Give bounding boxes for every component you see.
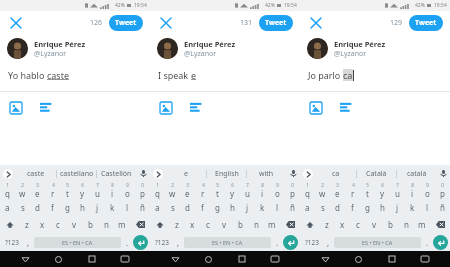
button[interactable]: 1 <box>300 182 315 199</box>
button[interactable]: Recents <box>84 251 100 267</box>
button[interactable]: l <box>420 199 435 216</box>
button[interactable]: Expand suggestions <box>0 165 16 182</box>
button[interactable]: Add poll <box>188 100 204 116</box>
button[interactable]: ñ <box>435 199 450 216</box>
button[interactable]: k <box>255 199 270 216</box>
button[interactable]: 3 <box>30 182 45 199</box>
button[interactable]: Period <box>421 233 433 251</box>
button[interactable]: Close <box>157 14 175 32</box>
button[interactable]: n <box>248 216 264 233</box>
button[interactable]: Backspace <box>280 216 300 233</box>
button[interactable]: m <box>114 216 130 233</box>
button[interactable]: ?123 <box>2 233 22 251</box>
button[interactable]: Shift <box>150 216 169 233</box>
button[interactable]: 4 <box>345 182 360 199</box>
button[interactable]: ?123 <box>152 233 172 251</box>
button[interactable]: Space <box>334 237 421 248</box>
button[interactable]: v <box>366 216 382 233</box>
button[interactable]: 0 <box>435 182 450 199</box>
button[interactable]: m <box>414 216 430 233</box>
button[interactable]: c <box>200 216 216 233</box>
button[interactable]: Comma <box>322 233 334 251</box>
button[interactable]: d <box>330 199 345 216</box>
button[interactable]: f <box>345 199 360 216</box>
button[interactable]: Tweet <box>409 15 443 31</box>
button[interactable]: Voice input <box>286 165 300 182</box>
button[interactable]: Enter <box>433 235 448 250</box>
button[interactable]: 3 <box>330 182 345 199</box>
button[interactable]: g <box>60 199 75 216</box>
button[interactable]: Add poll <box>338 100 354 116</box>
button[interactable]: 7 <box>90 182 105 199</box>
button[interactable]: 8 <box>105 182 120 199</box>
button[interactable]: h <box>375 199 390 216</box>
button[interactable]: Enter <box>283 235 298 250</box>
button[interactable]: s <box>315 199 330 216</box>
button[interactable]: Home <box>350 251 366 267</box>
button[interactable]: Space <box>184 237 271 248</box>
button[interactable]: 2 <box>165 182 180 199</box>
button[interactable]: s <box>15 199 30 216</box>
button[interactable]: 7 <box>240 182 255 199</box>
button[interactable]: Add photo <box>158 100 174 116</box>
button[interactable]: j <box>90 199 105 216</box>
button[interactable]: Recents <box>384 251 400 267</box>
button[interactable]: 7 <box>390 182 405 199</box>
button[interactable]: 0 <box>135 182 150 199</box>
button[interactable]: j <box>240 199 255 216</box>
button[interactable]: f <box>195 199 210 216</box>
button[interactable]: n <box>98 216 114 233</box>
button[interactable]: f <box>45 199 60 216</box>
button[interactable]: h <box>225 199 240 216</box>
button[interactable]: s <box>165 199 180 216</box>
button[interactable]: Voice input <box>436 165 450 182</box>
button[interactable]: 3 <box>180 182 195 199</box>
button[interactable]: caste <box>16 165 56 182</box>
button[interactable]: Expand suggestions <box>300 165 316 182</box>
button[interactable]: 9 <box>120 182 135 199</box>
button[interactable]: a <box>0 199 15 216</box>
button[interactable]: Enter <box>133 235 148 250</box>
button[interactable]: Castellón <box>97 165 136 182</box>
button[interactable]: Voice input <box>136 165 150 182</box>
button[interactable]: d <box>180 199 195 216</box>
button[interactable]: Shift <box>0 216 19 233</box>
button[interactable]: English <box>207 165 246 182</box>
button[interactable]: Period <box>121 233 133 251</box>
button[interactable]: 6 <box>375 182 390 199</box>
button[interactable]: Expand suggestions <box>150 165 166 182</box>
button[interactable]: k <box>105 199 120 216</box>
button[interactable]: ñ <box>135 199 150 216</box>
button[interactable]: n <box>398 216 414 233</box>
button[interactable]: Home <box>50 251 66 267</box>
button[interactable]: Close <box>307 14 325 32</box>
button[interactable]: ñ <box>285 199 300 216</box>
button[interactable]: Comma <box>172 233 184 251</box>
button[interactable]: 8 <box>255 182 270 199</box>
button[interactable]: Hide keyboard <box>417 251 433 267</box>
button[interactable]: with <box>247 165 286 182</box>
button[interactable]: l <box>120 199 135 216</box>
button[interactable]: ?123 <box>302 233 322 251</box>
button[interactable]: 5 <box>60 182 75 199</box>
button[interactable]: g <box>360 199 375 216</box>
button[interactable]: Back <box>17 251 33 267</box>
button[interactable]: z <box>19 216 34 233</box>
button[interactable]: 8 <box>405 182 420 199</box>
button[interactable]: català <box>397 165 436 182</box>
button[interactable]: z <box>169 216 184 233</box>
button[interactable]: m <box>264 216 280 233</box>
button[interactable]: Comma <box>22 233 34 251</box>
button[interactable]: Shift <box>300 216 319 233</box>
button[interactable]: b <box>232 216 248 233</box>
button[interactable]: 1 <box>150 182 165 199</box>
button[interactable]: x <box>334 216 350 233</box>
button[interactable]: Backspace <box>130 216 150 233</box>
button[interactable]: Add photo <box>308 100 324 116</box>
button[interactable]: Tweet <box>109 15 143 31</box>
button[interactable]: k <box>405 199 420 216</box>
button[interactable]: 1 <box>0 182 15 199</box>
button[interactable]: b <box>82 216 98 233</box>
button[interactable]: Hide keyboard <box>267 251 283 267</box>
button[interactable]: x <box>184 216 200 233</box>
